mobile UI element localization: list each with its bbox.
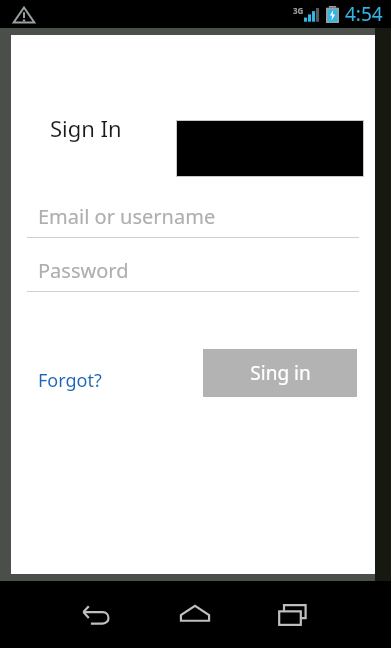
- button[interactable]: Password: [27, 255, 359, 299]
- staticText: 4:54: [345, 1, 383, 27]
- button[interactable]: Forgot?: [38, 362, 102, 398]
- button[interactable]: Email or username: [27, 201, 359, 245]
- staticText: Email or username: [38, 203, 216, 230]
- button[interactable]: Home: [167, 581, 223, 648]
- staticText: Forgot?: [38, 368, 102, 393]
- staticText: 3G: [293, 5, 304, 16]
- staticText: Sign In: [50, 113, 122, 143]
- button[interactable]: Sing in: [203, 349, 357, 397]
- staticText: Password: [38, 257, 129, 284]
- staticText: Sing in: [250, 360, 311, 386]
- button[interactable]: Back: [68, 581, 124, 648]
- button[interactable]: Recent apps: [265, 581, 321, 648]
